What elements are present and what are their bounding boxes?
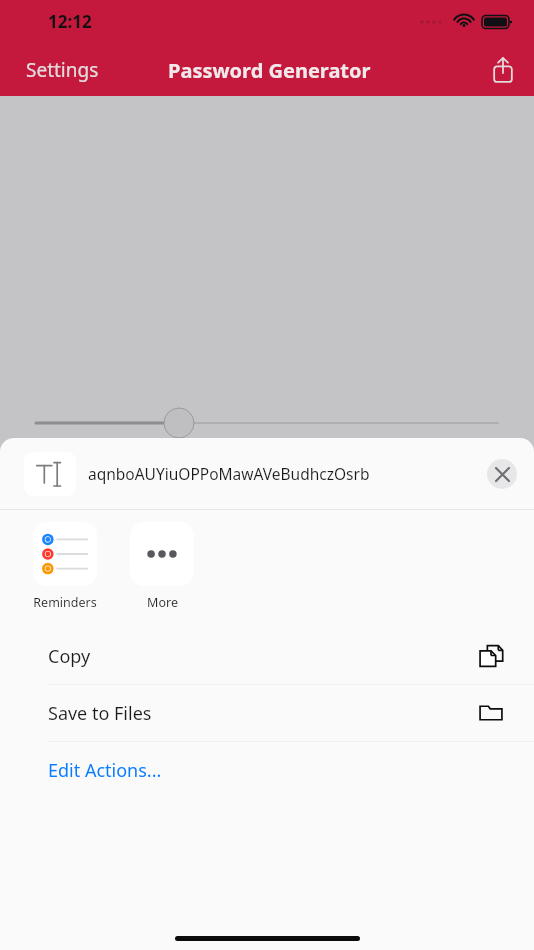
button[interactable]: Text document	[24, 452, 76, 496]
button[interactable]: Copy	[0, 628, 534, 684]
staticText: Edit Actions...	[48, 758, 162, 783]
staticText: Copy	[48, 644, 91, 669]
button[interactable]: Settings	[14, 51, 111, 89]
button[interactable]: Share	[482, 49, 524, 91]
staticText: Reminders	[33, 594, 97, 611]
button[interactable]: Edit Actions...	[0, 742, 534, 798]
staticText: 12:12	[48, 10, 92, 33]
staticText: Settings	[26, 57, 99, 83]
staticText: Save to Files	[48, 701, 152, 726]
button[interactable]: Save to Files	[0, 685, 534, 741]
button[interactable]: Reminders	[26, 522, 104, 611]
staticText: Password Generator	[168, 57, 371, 84]
staticText: More	[147, 594, 178, 611]
button[interactable]: More	[123, 522, 201, 611]
button[interactable]: Password length slider	[0, 405, 534, 445]
button[interactable]: Close	[487, 459, 517, 489]
staticText: aqnboAUYiuOPPoMawAVeBudhczOsrb	[88, 463, 370, 484]
